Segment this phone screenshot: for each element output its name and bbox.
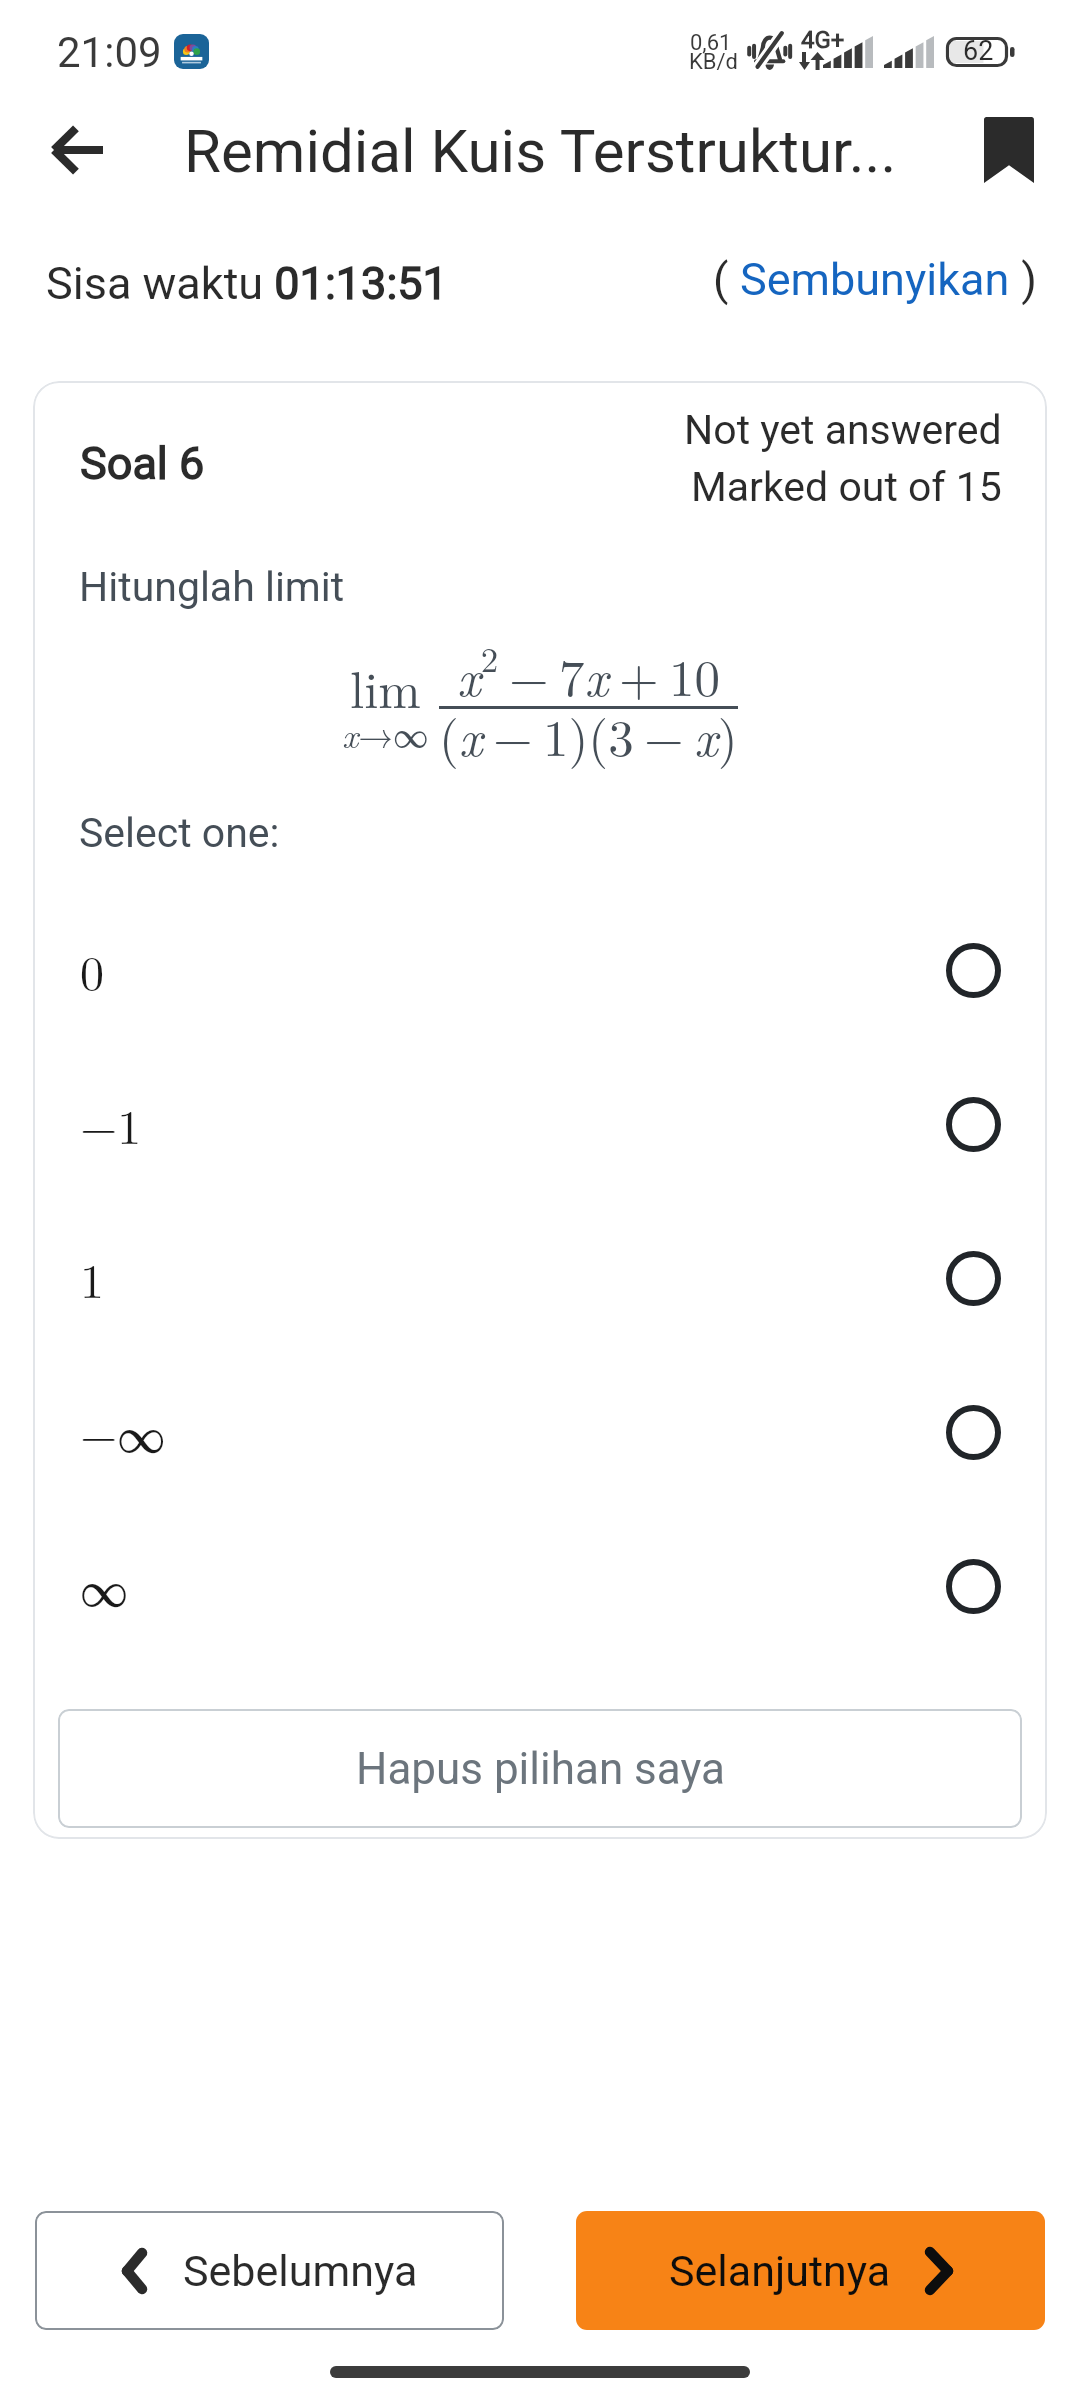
staticText: Select one: bbox=[79, 809, 280, 857]
staticText: ) bbox=[1010, 253, 1037, 306]
staticText: 1 bbox=[80, 1244, 105, 1312]
button[interactable]: 0 bbox=[33, 899, 1047, 1041]
button[interactable]: Hapus pilihan saya bbox=[58, 1709, 1022, 1828]
staticText: − bbox=[493, 699, 533, 771]
staticText: 7x bbox=[559, 639, 609, 711]
button[interactable]: ( bbox=[713, 253, 1037, 306]
staticText: 21:09 bbox=[57, 28, 162, 77]
staticText: − bbox=[644, 699, 684, 771]
staticText: Marked out of 15 bbox=[691, 463, 1002, 511]
staticText: ∞ bbox=[80, 1552, 129, 1620]
staticText: 10 bbox=[669, 639, 721, 711]
staticText: + bbox=[619, 639, 659, 711]
staticText: −1 bbox=[80, 1090, 142, 1158]
staticText: x2 bbox=[457, 633, 499, 711]
staticText: x→∞ bbox=[342, 709, 429, 759]
button[interactable]: ∞ bbox=[33, 1515, 1047, 1657]
button[interactable]: Bookmark bbox=[962, 103, 1056, 197]
staticText: Hitunglah limit bbox=[79, 563, 345, 611]
button[interactable]: 1 bbox=[33, 1207, 1047, 1349]
button[interactable]: Sebelumnya bbox=[35, 2211, 504, 2330]
staticText: (x bbox=[439, 699, 483, 771]
staticText: ( bbox=[713, 253, 740, 306]
staticText: lim bbox=[350, 651, 421, 723]
button[interactable]: Selanjutnya bbox=[576, 2211, 1045, 2330]
staticText: Not yet answered bbox=[684, 406, 1002, 454]
button[interactable]: −∞ bbox=[33, 1361, 1047, 1503]
staticText: 4G+ bbox=[801, 26, 845, 54]
staticText: Sisa waktu 01:13:51 bbox=[46, 257, 448, 310]
staticText: 62 bbox=[963, 35, 994, 67]
staticText: Sebelumnya bbox=[183, 2246, 418, 2296]
button[interactable]: −1 bbox=[33, 1053, 1047, 1195]
staticText: Soal 6 bbox=[80, 437, 205, 490]
staticText: 0 bbox=[80, 936, 105, 1004]
staticText: x) bbox=[694, 699, 738, 771]
staticText: KB/d bbox=[689, 49, 738, 75]
staticText: − bbox=[509, 639, 549, 711]
staticText: Remidial Kuis Terstruktur... bbox=[184, 116, 897, 186]
staticText: 0,61 bbox=[690, 30, 732, 56]
staticText: −∞ bbox=[80, 1398, 166, 1466]
staticText: Selanjutnya bbox=[669, 2246, 891, 2296]
staticText: 1)(3 bbox=[543, 699, 634, 771]
button[interactable]: Back bbox=[30, 103, 124, 197]
staticText: Hapus pilihan saya bbox=[356, 1743, 725, 1795]
staticText: Sembunyikan bbox=[740, 253, 1010, 306]
